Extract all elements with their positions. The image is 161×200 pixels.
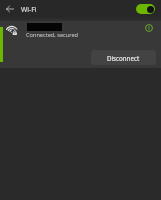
staticText: Wi-Fi (21, 5, 37, 14)
button[interactable]: Connected, secured (0, 21, 161, 68)
staticText: Disconnect (107, 54, 140, 62)
button[interactable]: Wi-Fi on (134, 2, 157, 15)
button[interactable]: Network details (142, 21, 156, 35)
staticText: Connected, secured (26, 31, 79, 39)
button[interactable]: Disconnect (91, 50, 156, 65)
button[interactable]: Back (2, 1, 17, 16)
